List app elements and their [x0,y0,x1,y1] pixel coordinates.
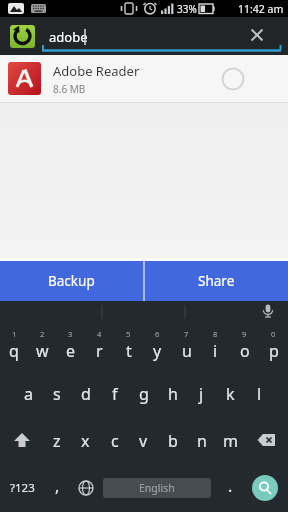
staticText: Share [198,272,235,290]
button[interactable]: k [216,370,245,417]
staticText: 3 [68,329,73,339]
staticText: 8 [213,329,218,339]
staticText: o [240,340,250,362]
staticText: w [36,340,49,362]
staticText: Backup [48,272,95,290]
staticText: j [199,383,204,405]
staticText: 6 [155,329,160,339]
button[interactable]: Adobe Reader [0,55,288,103]
button[interactable]: z [43,417,71,464]
button[interactable]: l [245,370,274,417]
staticText: 2 [40,329,45,339]
button[interactable]: f [100,370,129,417]
button[interactable]: s [42,370,71,417]
staticText: h [168,383,178,405]
button[interactable]: m [216,417,245,464]
staticText: b [168,430,178,452]
staticText: n [197,430,207,452]
button[interactable]: a [14,370,42,417]
button[interactable]: 2 [28,323,56,370]
staticText: m [223,430,238,452]
button[interactable]: g [129,370,158,417]
button[interactable]: d [71,370,100,417]
button[interactable] [10,24,35,49]
staticText: 7 [184,329,189,339]
staticText: v [139,430,148,452]
staticText: 1 [12,329,17,339]
button[interactable]: 3 [56,323,85,370]
staticText: 0 [271,329,276,339]
staticText: . [228,475,233,497]
staticText: 11:42 am [238,2,284,16]
staticText: t [126,340,132,362]
button[interactable]: 1 [0,323,28,370]
button[interactable]: 5 [114,323,143,370]
button[interactable]: English [103,478,211,498]
staticText: English [139,481,175,495]
staticText: u [182,340,192,362]
staticText: adobe [49,28,88,46]
button[interactable]: 9 [230,323,259,370]
button[interactable]: adobe [42,21,283,55]
staticText: l [257,383,262,405]
staticText: 4 [97,329,102,339]
staticText: , [55,475,60,497]
staticText: a [24,383,33,405]
staticText: y [153,340,162,362]
button[interactable]: ?123 [2,464,42,512]
button[interactable] [0,417,43,464]
button[interactable] [252,475,278,501]
staticText: ?123 [10,480,35,496]
staticText: i [213,340,218,362]
staticText: 8.6 MB [53,82,86,96]
staticText: d [81,383,91,405]
staticText: 5 [126,329,131,339]
staticText: f [112,383,118,405]
staticText: r [96,340,103,362]
button[interactable] [245,417,288,464]
button[interactable]: 4 [85,323,114,370]
button[interactable]: h [158,370,187,417]
button[interactable]: 0 [259,323,288,370]
button[interactable]: c [100,417,129,464]
button[interactable]: Share [145,261,288,301]
staticText: z [53,430,61,452]
staticText: g [139,383,149,405]
button[interactable]: Backup [0,261,143,301]
button[interactable]: 8 [201,323,230,370]
staticText: k [226,383,235,405]
staticText: p [269,340,279,362]
staticText: e [66,340,76,362]
button[interactable]: j [187,370,216,417]
staticText: c [111,430,119,452]
staticText: Adobe Reader [53,62,140,80]
button[interactable]: b [158,417,187,464]
button[interactable]: x [71,417,100,464]
staticText: s [53,383,61,405]
staticText: x [81,430,90,452]
button[interactable]: 6 [143,323,172,370]
button[interactable]: n [187,417,216,464]
button[interactable]: 7 [172,323,201,370]
button[interactable]: v [129,417,158,464]
staticText: q [9,340,19,362]
staticText: 9 [242,329,247,339]
staticText: 33% [177,2,197,16]
